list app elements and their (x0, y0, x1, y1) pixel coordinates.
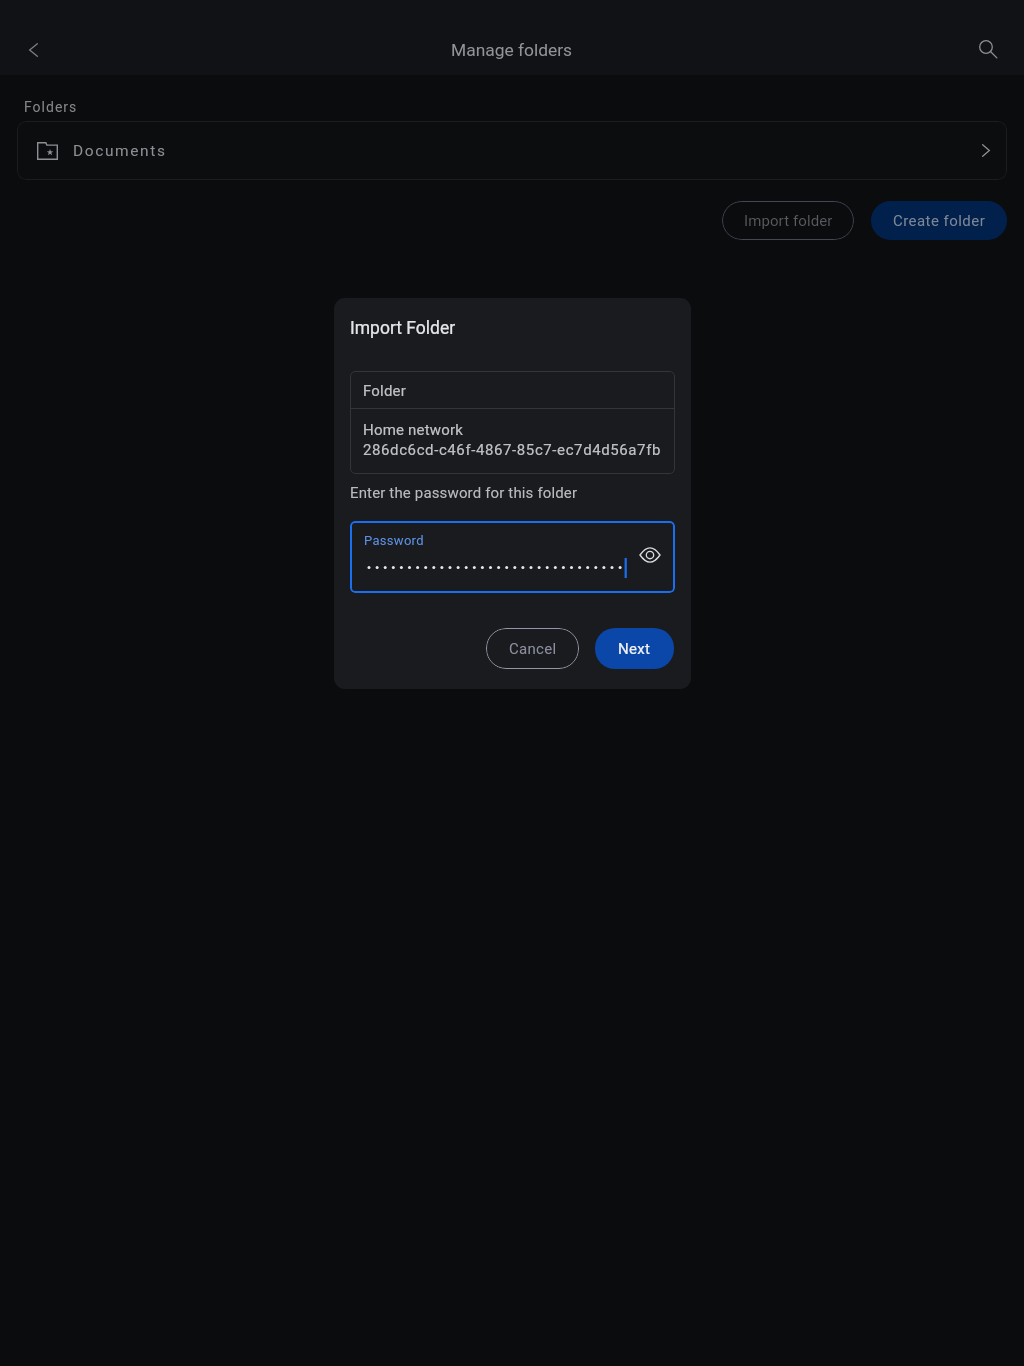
staticText: Password (364, 533, 424, 548)
staticText: Next (618, 640, 651, 658)
button[interactable]: Import folder (722, 201, 854, 240)
staticText: Documents (73, 142, 167, 160)
button[interactable]: Cancel (486, 628, 579, 669)
staticText: Manage folders (451, 40, 573, 60)
staticText: Cancel (509, 640, 557, 658)
button[interactable]: Password (350, 521, 675, 593)
staticText: Import folder (744, 212, 833, 230)
staticText: Folders (24, 99, 78, 115)
staticText: 286dc6cd-c46f-4867-85c7-ec7d4d56a7fb (363, 441, 661, 459)
staticText: Folder (363, 382, 407, 400)
staticText: Create folder (893, 212, 986, 230)
staticText: Home network (363, 421, 464, 439)
staticText: Import Folder (350, 318, 456, 339)
button[interactable]: Show password (634, 539, 666, 571)
button[interactable]: Next (595, 628, 674, 669)
button[interactable]: Search (967, 28, 1007, 68)
button[interactable]: Documents (17, 121, 1007, 180)
button[interactable]: Create folder (871, 201, 1007, 240)
staticText: Enter the password for this folder (350, 484, 578, 502)
button[interactable]: Back (13, 30, 53, 70)
